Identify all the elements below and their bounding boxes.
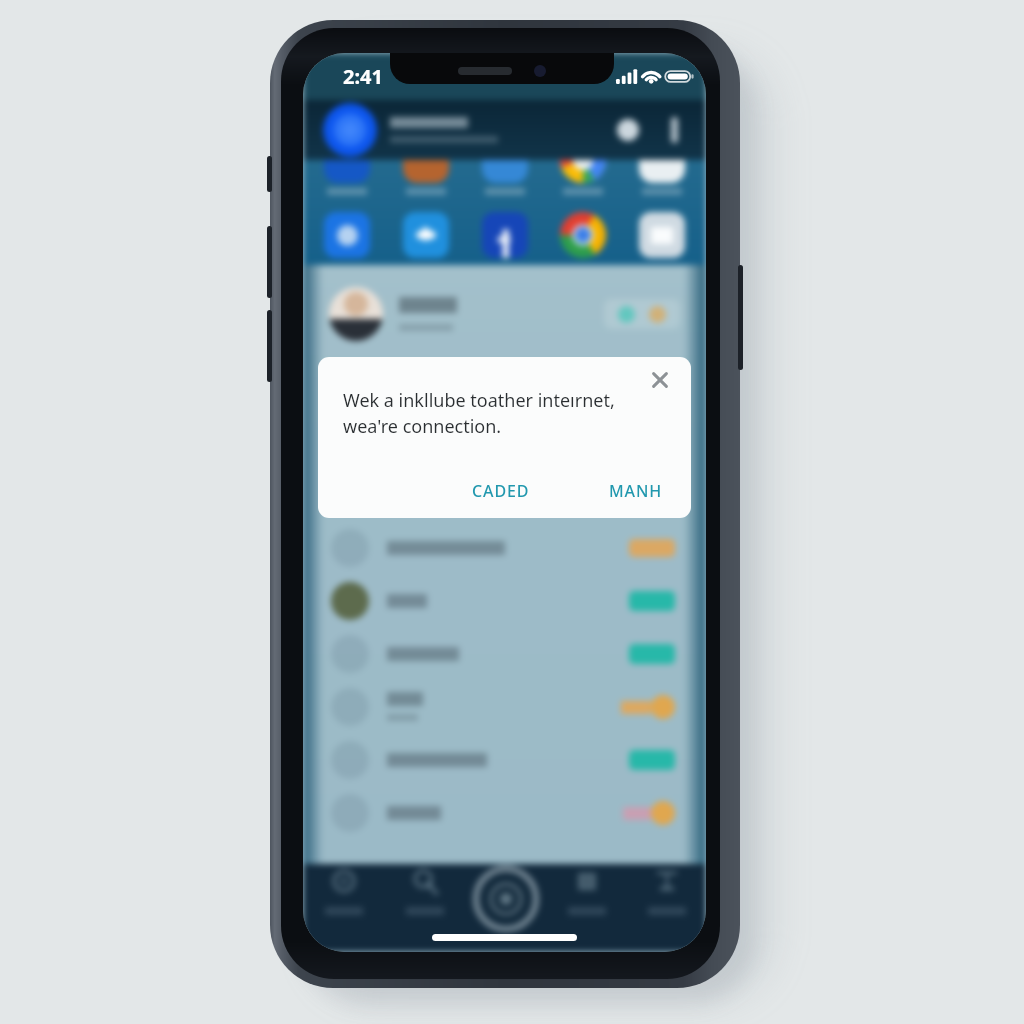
- button[interactable]: Close: [644, 364, 676, 396]
- button[interactable]: App: [324, 212, 370, 258]
- button[interactable]: [331, 415, 675, 468]
- button[interactable]: [331, 521, 675, 574]
- button[interactable]: [331, 574, 675, 627]
- button[interactable]: [331, 362, 675, 415]
- button[interactable]: CADED: [460, 471, 542, 511]
- button[interactable]: [331, 680, 675, 733]
- staticText: Wek a inkllube toather inteırnet, wea're…: [343, 388, 615, 439]
- button[interactable]: Search: [617, 119, 639, 141]
- button[interactable]: App: [482, 212, 528, 258]
- button[interactable]: [331, 468, 675, 521]
- button[interactable]: Search: [303, 100, 706, 160]
- button[interactable]: [331, 627, 675, 680]
- button[interactable]: More options: [671, 117, 678, 143]
- button[interactable]: [331, 786, 675, 839]
- button[interactable]: App: [560, 137, 606, 183]
- button[interactable]: Scan: [465, 864, 546, 930]
- button[interactable]: App: [639, 212, 685, 258]
- button[interactable]: App: [639, 137, 685, 183]
- button[interactable]: App: [324, 137, 370, 183]
- button[interactable]: MANH: [597, 471, 675, 511]
- button[interactable]: App: [403, 212, 449, 258]
- button[interactable]: [329, 265, 680, 362]
- button[interactable]: Search: [384, 864, 465, 930]
- button[interactable]: App: [482, 137, 528, 183]
- button[interactable]: Library: [546, 864, 627, 930]
- button[interactable]: Home: [303, 864, 384, 930]
- button[interactable]: Profile: [627, 864, 706, 930]
- button[interactable]: App: [560, 212, 606, 258]
- button[interactable]: [331, 733, 675, 786]
- button[interactable]: App: [403, 137, 449, 183]
- staticText: 2:41: [343, 63, 383, 90]
